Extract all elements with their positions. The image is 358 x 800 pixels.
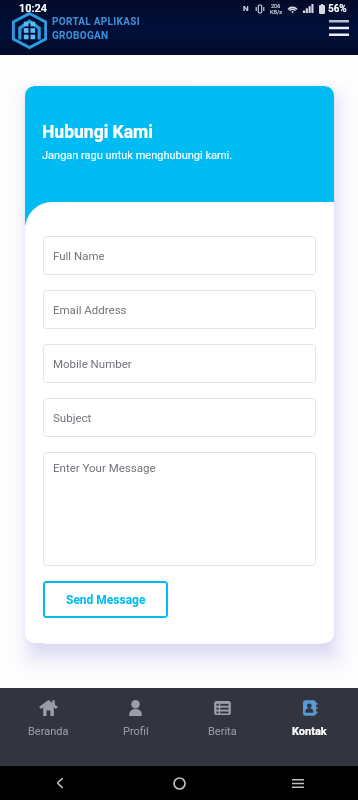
staticText: 56% <box>328 3 347 15</box>
staticText: Subject <box>53 411 92 424</box>
button[interactable]: Recents <box>281 766 315 800</box>
staticText: Send Message <box>66 593 146 607</box>
button[interactable]: Beranda <box>5 688 92 766</box>
staticText: Profil <box>123 725 149 738</box>
staticText: Kontak <box>292 725 327 738</box>
button[interactable]: Email Address <box>43 290 316 329</box>
staticText: Full Name <box>53 249 105 262</box>
staticText: Jangan ragu untuk menghubungi kami. <box>42 149 233 162</box>
button[interactable]: Menu <box>324 20 354 50</box>
staticText: N <box>243 4 249 13</box>
staticText: PORTAL APLIKASI <box>52 16 140 28</box>
button[interactable]: Back <box>43 766 77 800</box>
staticText: Beranda <box>28 725 69 738</box>
button[interactable]: Subject <box>43 398 316 437</box>
staticText: 10:24 <box>19 2 47 15</box>
staticText: Mobile Number <box>53 357 132 370</box>
staticText: GROBOGAN <box>52 30 109 42</box>
staticText: KB/s <box>270 9 282 15</box>
button[interactable]: Berita <box>179 688 266 766</box>
staticText: Email Address <box>53 303 127 316</box>
button[interactable]: Enter Your Message <box>43 452 316 566</box>
button[interactable]: Kontak <box>266 688 353 766</box>
staticText: 206 <box>271 3 281 9</box>
staticText: Hubungi Kami <box>42 122 153 143</box>
button[interactable]: Profil <box>92 688 179 766</box>
staticText: Berita <box>208 725 237 738</box>
button[interactable]: Full Name <box>43 236 316 275</box>
button[interactable]: Home <box>162 766 196 800</box>
staticText: Enter Your Message <box>53 461 156 474</box>
button[interactable]: Send Message <box>43 581 168 618</box>
button[interactable]: Mobile Number <box>43 344 316 383</box>
